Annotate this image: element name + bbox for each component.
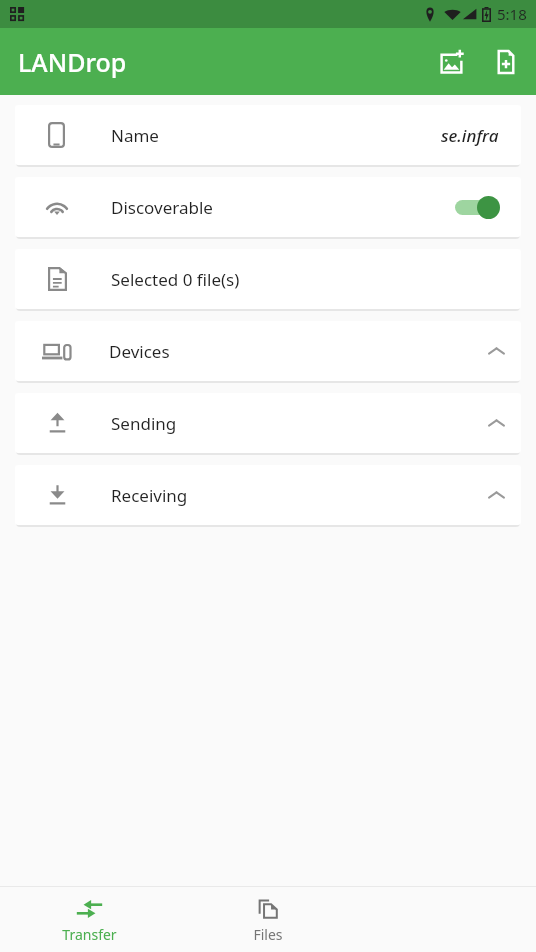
staticText: Transfer (62, 925, 117, 944)
button[interactable]: Transfer (0, 887, 178, 952)
staticText: 5:18 (497, 4, 527, 24)
button[interactable]: Discoverable toggle (451, 190, 503, 224)
staticText: Selected 0 file(s) (111, 268, 240, 291)
staticText: Sending (111, 412, 177, 435)
staticText: Discoverable (111, 196, 213, 219)
button[interactable]: Collapse (472, 327, 520, 375)
button[interactable]: Name (15, 105, 521, 165)
button[interactable]: Files (178, 887, 357, 952)
button[interactable]: Receiving (15, 465, 521, 525)
button[interactable]: Collapse (472, 471, 520, 519)
button[interactable]: Discoverable (15, 177, 521, 237)
staticText: Devices (109, 340, 170, 363)
button[interactable]: Add photo (428, 38, 476, 86)
staticText: Files (253, 925, 283, 944)
staticText: Receiving (111, 484, 188, 507)
staticText: LANDrop (18, 45, 127, 79)
staticText: se.infra (441, 124, 499, 147)
button[interactable]: Add file (482, 38, 530, 86)
button[interactable]: Collapse (472, 399, 520, 447)
staticText: Name (111, 124, 159, 147)
button[interactable]: Devices (15, 321, 521, 381)
button[interactable]: Sending (15, 393, 521, 453)
button[interactable]: Selected 0 file(s) (15, 249, 521, 309)
